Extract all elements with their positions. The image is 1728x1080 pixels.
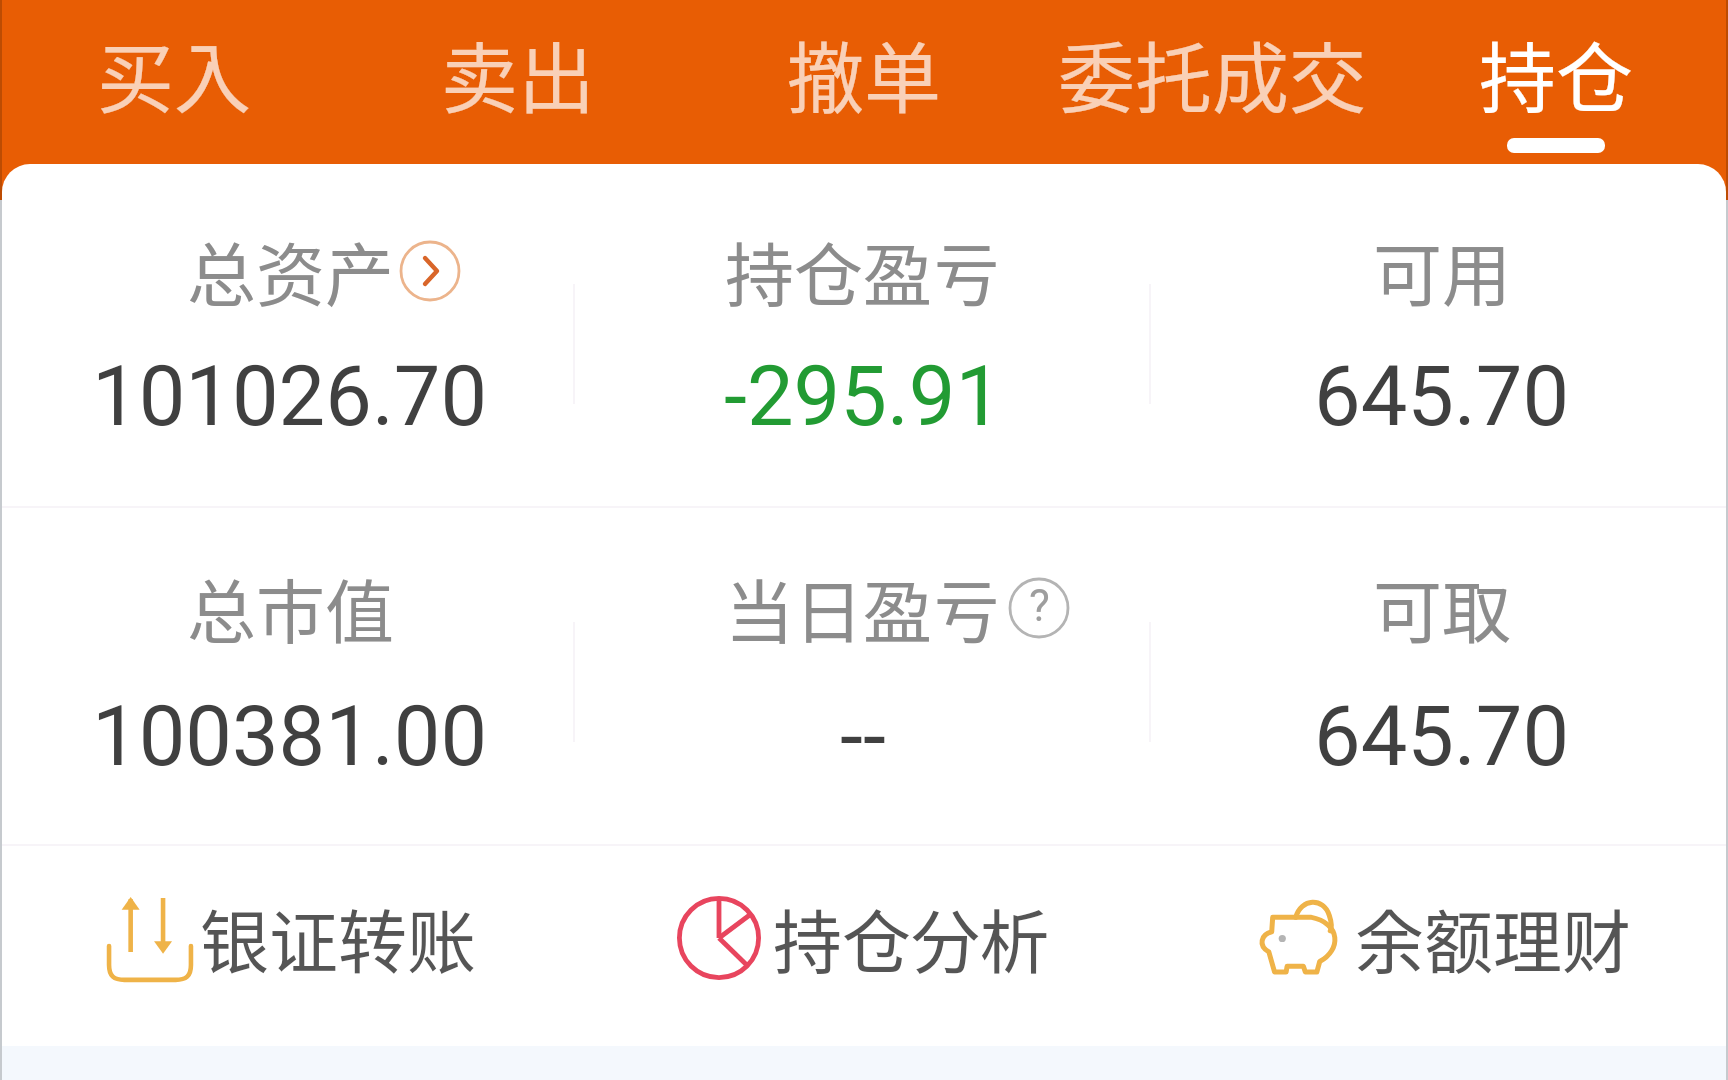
staticText: 645.70 [1314, 688, 1570, 785]
staticText: 645.70 [1314, 348, 1570, 445]
staticText: 持仓 [1479, 18, 1633, 129]
staticText: 余额理财 [1355, 888, 1631, 988]
staticText: 100381.00 [92, 688, 488, 785]
button[interactable]: 委托成交 [1028, 0, 1396, 163]
staticText: 持仓盈亏 [725, 221, 1001, 321]
staticText: 买入 [97, 18, 251, 129]
button[interactable]: 持仓 [1447, 0, 1665, 163]
button[interactable]: 持仓盈亏 [575, 192, 1151, 464]
staticText: 当日盈亏 [725, 558, 1001, 658]
button[interactable]: 卖出 [409, 0, 627, 163]
button[interactable]: 银证转账图标 [2, 846, 578, 1046]
staticText: 卖出 [441, 18, 595, 129]
button[interactable]: 余额理财图标 [1154, 846, 1726, 1046]
staticText: 总资产 [187, 221, 394, 321]
button[interactable]: 当日盈亏 [575, 529, 1151, 804]
button[interactable]: 撤单 [755, 0, 973, 163]
staticText: 撤单 [787, 18, 941, 129]
staticText: 委托成交 [1058, 18, 1366, 129]
button[interactable]: 总市值 [2, 529, 578, 804]
staticText: 总市值 [187, 558, 394, 658]
staticText: -295.91 [724, 348, 1003, 445]
staticText: 可用 [1373, 221, 1511, 321]
other: 查看总资产详情 [399, 240, 461, 302]
other: 余额理财图标 [1253, 890, 1349, 986]
staticText: ? [1029, 580, 1050, 632]
staticText: 101026.70 [92, 348, 488, 445]
other: 银证转账图标 [105, 893, 195, 983]
button[interactable]: 总资产 [2, 192, 578, 464]
staticText: -- [840, 688, 886, 785]
staticText: 持仓分析 [773, 888, 1049, 988]
button[interactable]: 可用 [1154, 192, 1726, 464]
other: 持仓分析图标 [677, 896, 761, 980]
button[interactable]: 可取 [1154, 529, 1726, 804]
button[interactable]: 买入 [65, 0, 283, 163]
staticText: 可取 [1373, 558, 1511, 658]
staticText: 银证转账 [200, 888, 476, 988]
button[interactable]: 持仓分析图标 [575, 846, 1151, 1046]
